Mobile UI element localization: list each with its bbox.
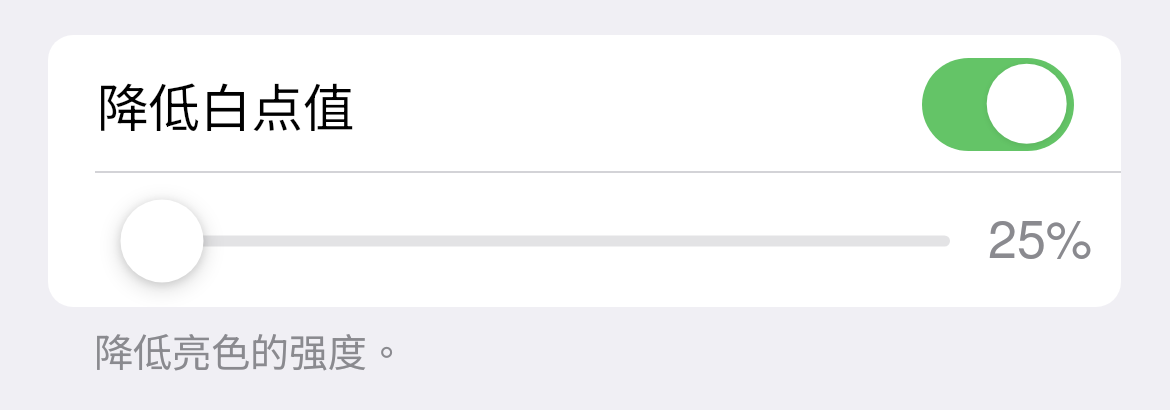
button[interactable]: White point intensity, 25 percent <box>48 172 1121 307</box>
staticText: 25% <box>988 198 1093 272</box>
staticText: 降低白点值 <box>97 77 355 138</box>
staticText: 降低亮色的强度。 <box>94 329 407 375</box>
button[interactable]: 降低白点值 <box>48 35 1121 171</box>
button[interactable]: Reduce White Point, on <box>922 58 1074 151</box>
